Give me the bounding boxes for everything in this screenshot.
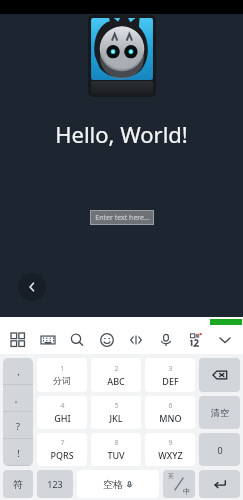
staticText: 空格 (103, 478, 123, 491)
button[interactable]: 8 (91, 433, 141, 466)
staticText: 中 (183, 487, 190, 496)
button[interactable]: ， (3, 358, 33, 385)
button[interactable]: 清空 (199, 396, 240, 429)
button[interactable]: Keyboard layouts (6, 328, 30, 352)
staticText: 3 (168, 364, 173, 374)
button[interactable]: 1 (37, 358, 87, 392)
staticText: 0 (217, 444, 223, 456)
button[interactable]: 英 (163, 470, 195, 498)
button[interactable]: Enter text here... (90, 210, 154, 225)
staticText: 123 (47, 478, 63, 490)
button[interactable]: ! (3, 439, 33, 466)
button[interactable]: 2 (91, 358, 141, 392)
staticText: ABC (107, 375, 125, 387)
staticText: Hello, World! (55, 119, 188, 149)
button[interactable]: 4 (37, 396, 87, 429)
button[interactable]: Back (18, 273, 46, 301)
staticText: 英 (168, 472, 174, 480)
button[interactable]: 6 (145, 396, 195, 429)
staticText: 符 (13, 478, 23, 491)
button[interactable]: 5 (91, 396, 141, 429)
button[interactable]: 7 (37, 433, 87, 466)
staticText: GHI (54, 412, 71, 424)
staticText: ? (16, 420, 20, 432)
button[interactable] (199, 470, 240, 498)
button[interactable]: Settings (124, 328, 148, 352)
button[interactable]: Emoji (95, 328, 119, 352)
button[interactable] (88, 15, 156, 97)
staticText: 清空 (211, 407, 229, 418)
button[interactable]: 9 (145, 433, 195, 466)
button[interactable]: 123 (37, 470, 73, 498)
button[interactable]: Voice input (154, 328, 178, 352)
staticText: 6 (168, 401, 173, 411)
staticText: ， (14, 366, 23, 377)
button[interactable]: 0 (199, 433, 240, 466)
button[interactable]: Search (65, 328, 89, 352)
staticText: JKL (109, 412, 123, 424)
button[interactable]: Calendar (183, 328, 207, 352)
staticText: PQRS (50, 449, 74, 461)
staticText: ! (17, 447, 20, 459)
button[interactable]: 3 (145, 358, 195, 392)
staticText: MNO (159, 412, 182, 424)
staticText: 。 (14, 393, 23, 404)
staticText: DEF (162, 375, 179, 387)
staticText: 2 (114, 364, 119, 374)
staticText: WXYZ (158, 449, 183, 461)
button[interactable]: Hide keyboard (213, 328, 237, 352)
button[interactable]: Backspace (199, 358, 240, 392)
staticText: TUV (107, 449, 125, 461)
staticText: 9 (168, 438, 173, 448)
staticText: 分词 (53, 375, 71, 386)
staticText: 8 (114, 438, 119, 448)
staticText: 1 (60, 364, 65, 374)
staticText: 7 (60, 438, 65, 448)
button[interactable]: Keyboard (36, 328, 60, 352)
staticText: 5 (114, 401, 119, 411)
button[interactable]: 空格 (77, 470, 159, 498)
staticText: 4 (60, 401, 65, 411)
button[interactable]: ? (3, 412, 33, 439)
button[interactable]: 符 (3, 470, 33, 498)
staticText: Enter text here... (95, 213, 150, 223)
button[interactable]: 。 (3, 385, 33, 412)
